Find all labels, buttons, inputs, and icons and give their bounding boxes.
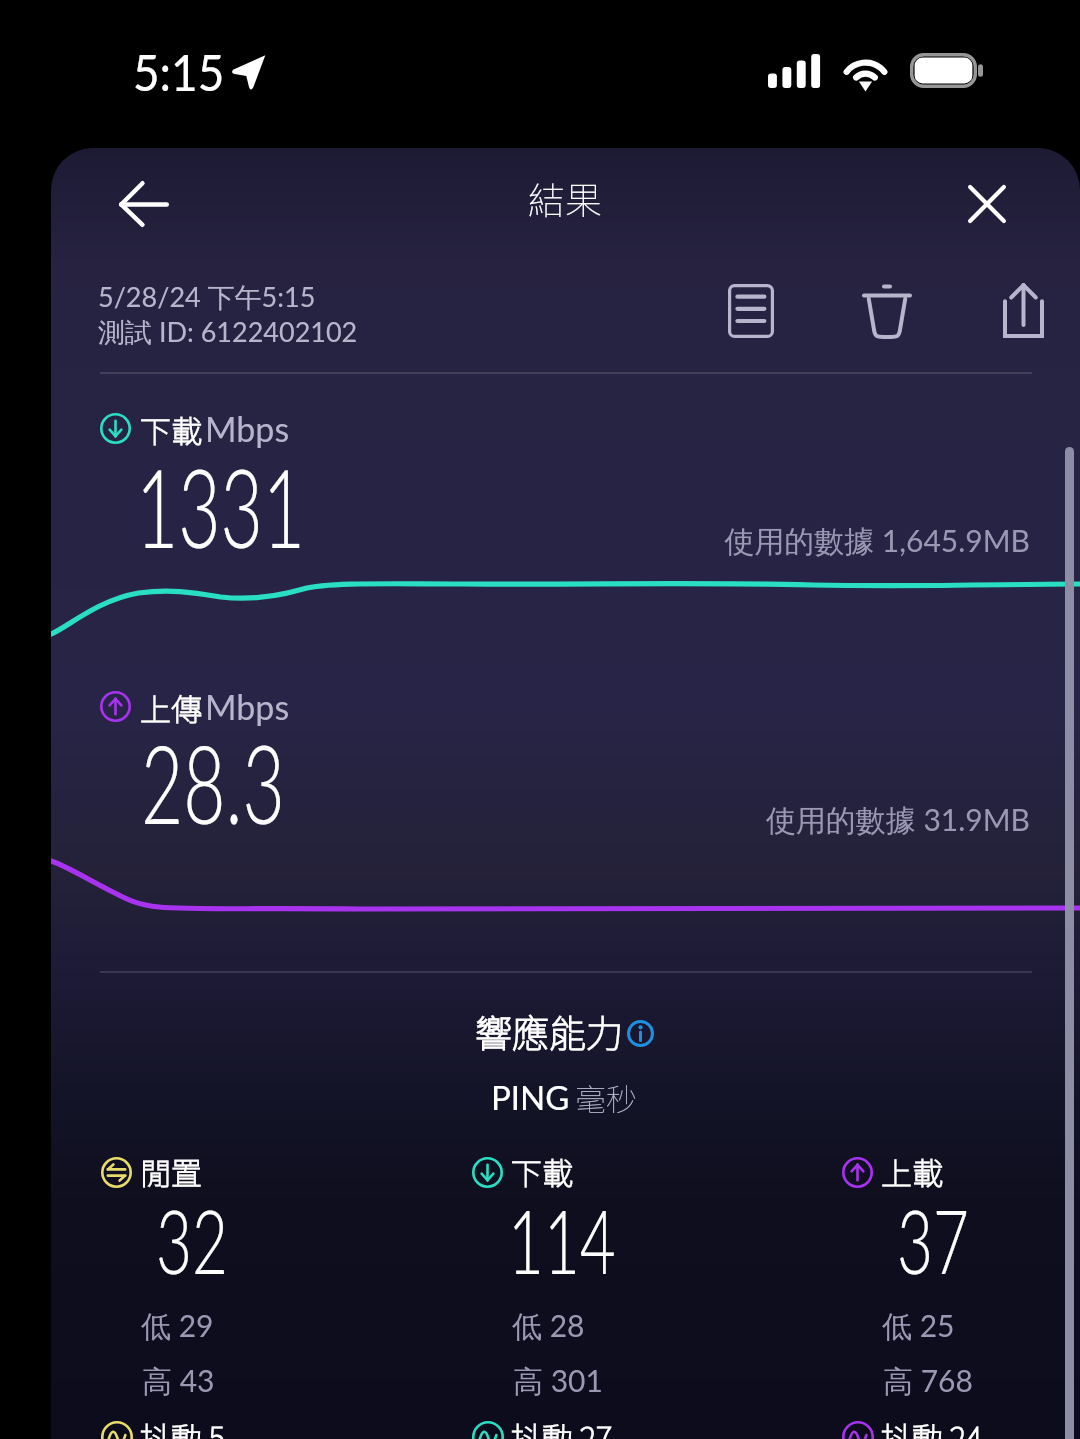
staticText: 高 768 [883, 1362, 973, 1401]
button[interactable]: Delete [845, 270, 929, 354]
staticText: 5:15 [133, 42, 225, 102]
button[interactable]: Info [616, 1009, 664, 1057]
staticText: 使用的數據 31.9MB [473, 801, 1030, 840]
staticText: 低 25 [882, 1307, 955, 1346]
staticText: 5/28/24 下午5:15 [98, 280, 316, 315]
staticText: Mbps [205, 408, 290, 449]
staticText: PING [491, 1077, 570, 1117]
button[interactable]: Back [98, 158, 190, 250]
staticText: 32 [156, 1186, 228, 1293]
staticText: 37 [897, 1186, 969, 1293]
staticText: 抖動 24 [881, 1414, 983, 1439]
staticText: 響應能力 [475, 1004, 623, 1058]
staticText: 閒置 [140, 1149, 202, 1194]
button[interactable]: Close [941, 158, 1033, 250]
staticText: Mbps [205, 686, 290, 727]
staticText: 毫秒 [575, 1075, 637, 1120]
staticText: 抖動 27 [511, 1414, 613, 1439]
staticText: 上載 [881, 1149, 943, 1194]
staticText: 使用的數據 1,645.9MB [473, 522, 1030, 561]
staticText: 上傳 [140, 685, 202, 730]
staticText: 高 43 [142, 1362, 215, 1401]
staticText: 高 301 [513, 1362, 603, 1401]
staticText: 1331 [136, 441, 305, 571]
staticText: 114 [508, 1186, 616, 1293]
staticText: 28.3 [141, 717, 285, 847]
staticText: 測試 ID: 6122402102 [98, 315, 358, 350]
staticText: 下載 [140, 407, 202, 452]
staticText: 結果 [528, 171, 602, 225]
staticText: 下載 [511, 1149, 573, 1194]
staticText: 低 29 [141, 1307, 214, 1346]
staticText: 低 28 [512, 1307, 585, 1346]
button[interactable]: Share [981, 269, 1065, 353]
button[interactable]: Results list [709, 269, 793, 353]
staticText: 抖動 5 [140, 1414, 225, 1439]
